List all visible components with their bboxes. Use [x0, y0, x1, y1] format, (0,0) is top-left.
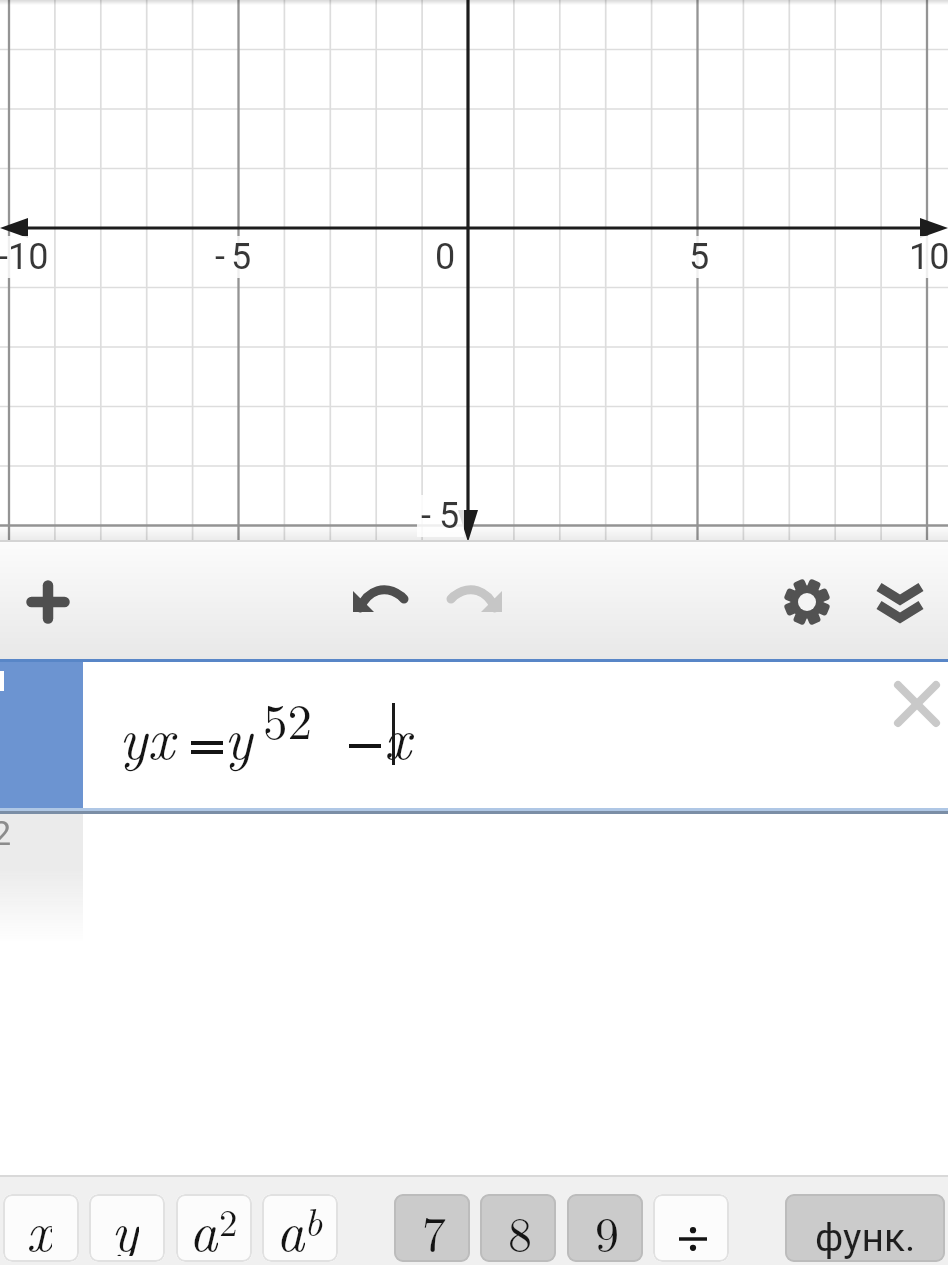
button[interactable]: функ. — [785, 1194, 945, 1262]
staticText: 7 — [422, 1197, 447, 1262]
staticText: 0 — [435, 236, 456, 278]
staticText: a — [189, 1194, 218, 1256]
button[interactable] — [12, 566, 84, 638]
staticText: 9 — [595, 1197, 620, 1262]
staticText: функ. — [815, 1215, 916, 1261]
staticText: a — [276, 1194, 305, 1256]
button[interactable] — [864, 569, 936, 641]
button[interactable]: 8 — [480, 1194, 556, 1262]
staticText: 8 — [508, 1197, 533, 1262]
staticText: 10 — [909, 236, 948, 278]
button[interactable] — [439, 564, 511, 636]
button[interactable] — [344, 564, 416, 636]
staticText: - — [215, 236, 225, 278]
staticText: 5 — [689, 236, 710, 278]
staticText: -10 — [0, 236, 49, 278]
button[interactable]: y — [89, 1194, 165, 1262]
staticText: b — [304, 1194, 323, 1248]
button[interactable]: 9 — [567, 1194, 643, 1262]
staticText: 5 — [231, 236, 252, 278]
staticText: x — [26, 1194, 52, 1256]
staticText: y — [224, 694, 253, 776]
button[interactable]: a — [176, 1194, 252, 1262]
button[interactable] — [771, 566, 843, 638]
staticText: 2 — [219, 1194, 238, 1246]
staticText: 5 — [439, 495, 460, 537]
button[interactable]: a — [262, 1194, 338, 1262]
button[interactable] — [887, 674, 947, 734]
staticText: yx — [119, 694, 175, 776]
button[interactable]: 2 — [0, 814, 948, 944]
button[interactable]: 7 — [394, 1194, 470, 1262]
staticText: x — [384, 694, 411, 776]
button[interactable] — [653, 1194, 729, 1262]
staticText: y — [111, 1194, 139, 1256]
staticText: - — [421, 495, 431, 537]
staticText: 2 — [0, 813, 12, 853]
staticText: 52 — [263, 684, 313, 753]
button[interactable]: x — [3, 1194, 79, 1262]
button[interactable] — [0, 659, 948, 809]
